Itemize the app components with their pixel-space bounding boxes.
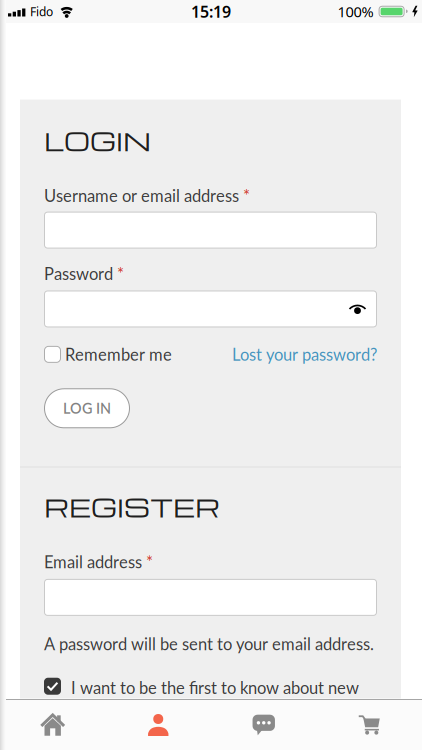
staticText: Username or email address	[44, 186, 239, 206]
button[interactable]: Home	[0, 700, 105, 750]
staticText: 100%	[338, 2, 374, 21]
staticText: 15:19	[191, 1, 231, 22]
button[interactable]: Account	[105, 700, 211, 750]
staticText: LOGIN	[44, 122, 151, 158]
staticText: Fido	[30, 3, 53, 19]
staticText: *	[146, 552, 153, 572]
staticText: Lost your password?	[232, 344, 377, 364]
staticText: I want to be the first to know about new	[71, 678, 359, 697]
staticText: LOG IN	[63, 400, 111, 417]
staticText: Email address	[44, 552, 142, 572]
button[interactable]: Show password	[343, 303, 377, 315]
staticText: REGISTER	[44, 489, 220, 524]
button[interactable]: LOG IN	[44, 388, 130, 428]
button[interactable]: Cart	[316, 700, 422, 750]
staticText: Password	[44, 264, 113, 283]
staticText: Remember me	[65, 344, 172, 364]
button[interactable]: Remember me	[44, 344, 172, 364]
staticText: *	[117, 264, 124, 283]
staticText: *	[243, 186, 250, 206]
staticText: A password will be sent to your email ad…	[44, 634, 374, 654]
button[interactable]: I want to be the first to know about new	[44, 678, 359, 697]
button[interactable]: Messages	[211, 700, 316, 750]
button[interactable]: Lost your password?	[232, 344, 377, 364]
